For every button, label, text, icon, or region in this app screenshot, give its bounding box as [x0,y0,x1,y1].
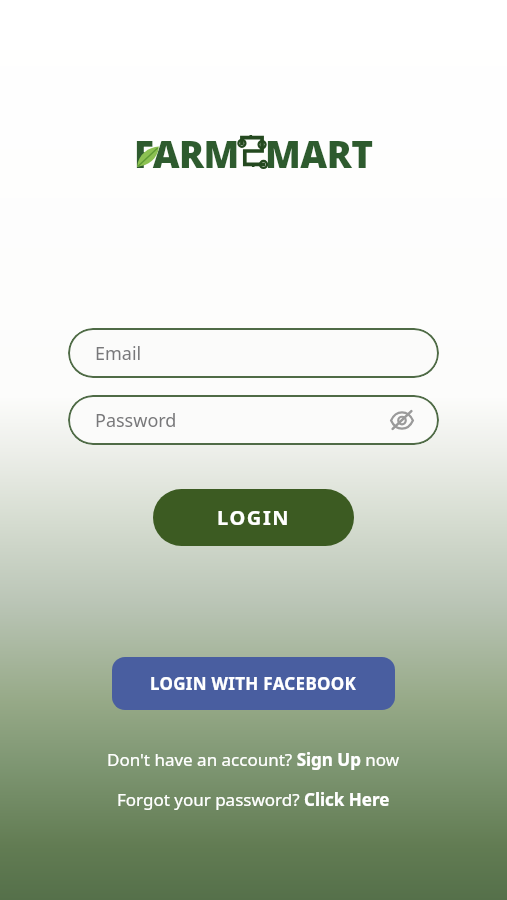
staticText: Password [95,408,177,433]
staticText: Email [95,341,142,366]
staticText: FARM [134,128,239,174]
button[interactable]: Show password [385,403,419,437]
staticText: LOGIN [217,504,291,531]
staticText: MART [265,128,373,174]
staticText: Don't have an account? Sign Up now [107,748,400,771]
button[interactable]: LOGIN [153,489,354,546]
staticText: Forgot your password? Click Here [117,788,390,811]
button[interactable]: Email [68,328,439,378]
button[interactable]: Don't have an account? Sign Up now [101,746,406,773]
staticText: LOGIN WITH FACEBOOK [150,672,357,695]
button[interactable]: Forgot your password? Click Here [111,786,396,813]
button[interactable]: LOGIN WITH FACEBOOK [112,657,395,710]
button[interactable]: Password [68,395,439,445]
